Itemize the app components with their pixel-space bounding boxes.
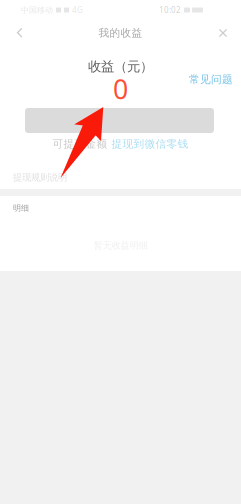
staticText: 0 xyxy=(113,71,128,107)
staticText: 可提现金额 xyxy=(52,137,107,150)
staticText: 暂无收益明细 xyxy=(93,240,147,251)
button[interactable]: Back xyxy=(6,20,34,46)
button[interactable]: 常见问题 xyxy=(189,60,241,86)
staticText: 提现到微信零钱 xyxy=(111,137,188,150)
staticText: 明细 xyxy=(13,203,29,213)
staticText: 我的收益 xyxy=(98,26,142,39)
button[interactable] xyxy=(0,100,241,133)
button[interactable]: 提现规则说明 xyxy=(0,149,67,189)
button[interactable]: Close xyxy=(209,20,237,46)
staticText: 收益（元） xyxy=(88,58,153,75)
button[interactable]: 提现到微信零钱 xyxy=(111,137,188,150)
staticText: 中国移动 xyxy=(21,5,53,15)
staticText: 10:02 xyxy=(159,5,181,15)
staticText: 提现规则说明 xyxy=(13,172,67,183)
staticText: 常见问题 xyxy=(189,73,233,86)
staticText: 4G xyxy=(72,5,83,15)
